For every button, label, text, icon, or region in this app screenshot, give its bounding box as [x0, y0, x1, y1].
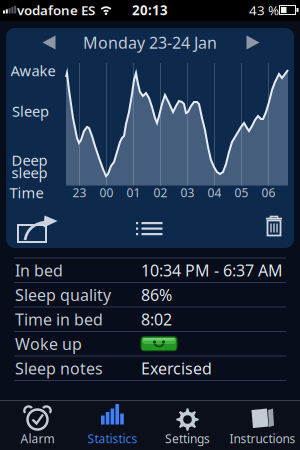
staticText: Time in bed	[15, 309, 103, 330]
staticText: Sleep quality	[15, 284, 111, 305]
staticText: Time	[9, 183, 43, 202]
staticText: Monday 23-24 Jan	[83, 32, 217, 53]
staticText: 43 %	[249, 1, 279, 19]
staticText: 05	[234, 184, 248, 200]
button[interactable]: Delete night	[263, 214, 285, 238]
button[interactable]: Sleep notes list	[136, 220, 164, 238]
staticText: In bed	[15, 260, 63, 281]
staticText: 01	[126, 184, 140, 200]
staticText: Alarm	[20, 430, 54, 446]
button[interactable]: Next night	[244, 34, 260, 50]
button[interactable]: Settings	[150, 401, 225, 449]
staticText: 02	[153, 184, 167, 200]
staticText: 04	[207, 184, 221, 200]
button[interactable]: Share	[16, 215, 60, 245]
button[interactable]: Alarm	[0, 401, 75, 449]
staticText: Woke up	[15, 333, 82, 354]
staticText: 23	[72, 184, 86, 200]
button[interactable]: Statistics	[75, 401, 150, 449]
staticText: vodafone ES	[17, 1, 95, 19]
staticText: 8:02	[141, 309, 172, 330]
staticText: 20:13	[132, 1, 168, 19]
button[interactable]: Previous night	[41, 34, 57, 50]
button[interactable]: Instructions	[225, 401, 300, 449]
staticText: Deep	[11, 150, 47, 170]
staticText: Instructions	[229, 430, 295, 446]
staticText: 86%	[141, 284, 172, 305]
staticText: Awake	[10, 61, 55, 80]
staticText: Statistics	[87, 430, 137, 446]
staticText: Sleep notes	[15, 358, 103, 379]
staticText: sleep	[11, 163, 47, 182]
staticText: 00	[99, 184, 113, 200]
staticText: Sleep	[12, 101, 49, 121]
staticText: 06	[261, 184, 275, 200]
staticText: 03	[180, 184, 194, 200]
staticText: 10:34 PM - 6:37 AM	[141, 260, 283, 281]
staticText: Settings	[165, 430, 210, 446]
button[interactable]: Woke up mood	[141, 337, 177, 351]
staticText: Exercised	[141, 358, 212, 379]
